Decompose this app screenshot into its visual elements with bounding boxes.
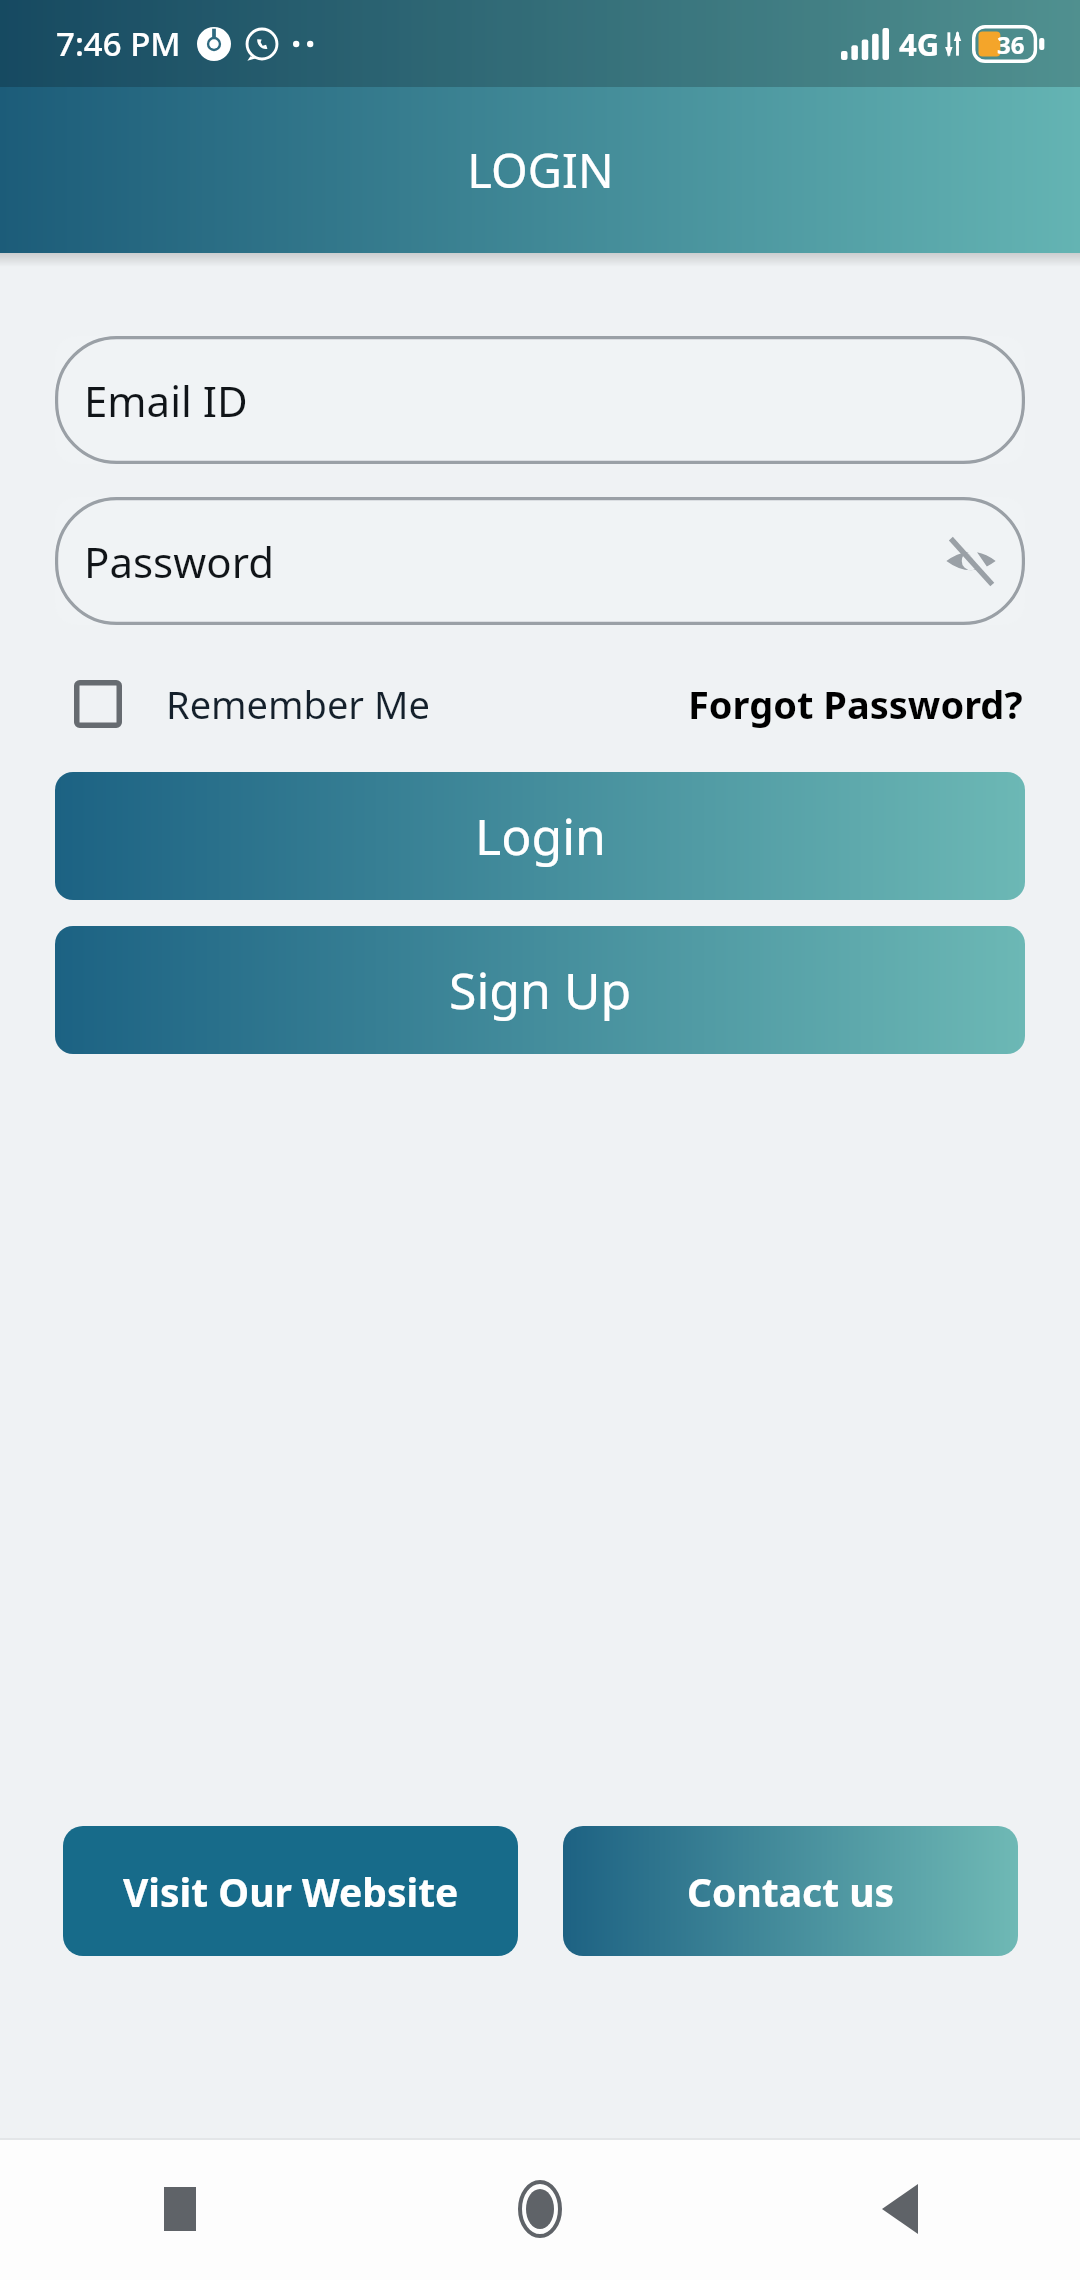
button[interactable]: Sign Up [55,926,1025,1054]
staticText: 4G [899,23,940,65]
staticText: Password [84,533,274,590]
button[interactable]: Visit Our Website [63,1826,518,1956]
button[interactable]: Login [55,772,1025,900]
staticText: Contact us [687,1865,895,1918]
button[interactable]: Remember Me [55,678,438,730]
staticText: 7:46 PM [56,21,181,66]
staticText: Remember Me [166,678,430,730]
staticText: 36 [997,28,1025,61]
button[interactable]: Password [55,497,1025,625]
staticText: Sign Up [449,956,632,1024]
staticText: Visit Our Website [123,1865,459,1918]
staticText: Forgot Password? [688,678,1023,730]
button[interactable]: Recent apps [0,2138,360,2280]
button[interactable]: Contact us [563,1826,1018,1956]
button[interactable]: Email ID [55,336,1025,464]
button[interactable]: Back [720,2138,1080,2280]
button[interactable]: Forgot Password? [686,672,1025,736]
staticText: LOGIN [467,138,614,202]
staticText: Email ID [84,372,248,429]
button[interactable]: Show password [943,533,999,589]
staticText: Login [475,802,606,870]
button[interactable]: Home [360,2138,720,2280]
